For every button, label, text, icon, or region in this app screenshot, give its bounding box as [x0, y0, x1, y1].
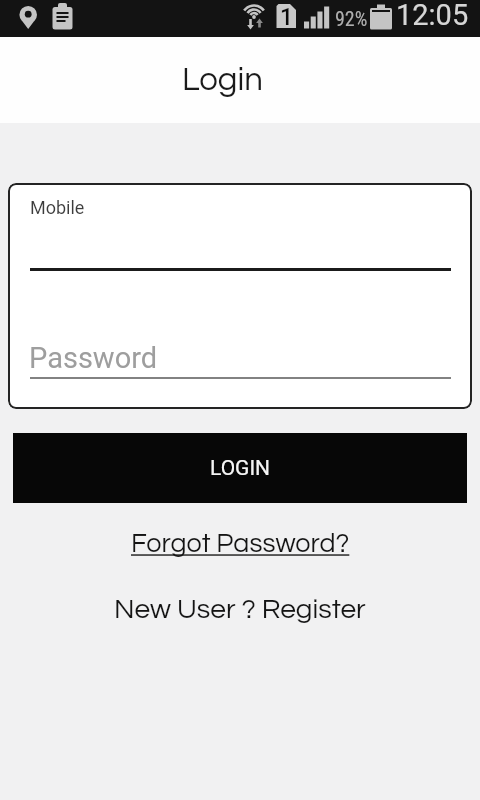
staticText: 92% — [335, 7, 368, 30]
staticText: Mobile — [30, 197, 85, 218]
button[interactable]: Forgot Password? — [131, 530, 350, 558]
staticText: 1 — [280, 4, 294, 31]
button[interactable] — [30, 321, 451, 379]
button[interactable] — [30, 211, 451, 271]
staticText: LOGIN — [210, 456, 271, 481]
staticText: Login — [182, 63, 263, 97]
staticText: Password — [29, 341, 158, 375]
staticText: 12:05 — [396, 0, 469, 32]
button[interactable]: New User ? Register — [114, 595, 366, 624]
button[interactable]: LOGIN — [13, 433, 467, 503]
